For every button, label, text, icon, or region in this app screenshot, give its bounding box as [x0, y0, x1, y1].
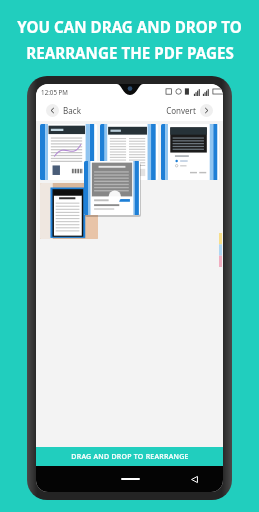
button[interactable]: Back — [187, 472, 201, 486]
button[interactable] — [161, 124, 219, 180]
staticText: Back — [63, 105, 81, 116]
button[interactable]: DRAG AND DROP TO REARRANGE — [36, 447, 223, 466]
button[interactable] — [40, 183, 98, 239]
staticText: YOU CAN DRAG AND DROP TO — [17, 17, 242, 38]
staticText: REARRANGE THE PDF PAGES — [26, 43, 234, 64]
staticText: 12:05 PM — [41, 88, 68, 96]
button[interactable]: Back — [42, 102, 85, 119]
button[interactable]: Convert — [162, 102, 217, 119]
button[interactable]: Home — [115, 473, 145, 485]
button[interactable] — [40, 124, 97, 180]
staticText: Convert — [166, 105, 196, 116]
staticText: DRAG AND DROP TO REARRANGE — [71, 452, 189, 462]
button[interactable] — [84, 161, 140, 215]
button[interactable] — [100, 124, 158, 180]
